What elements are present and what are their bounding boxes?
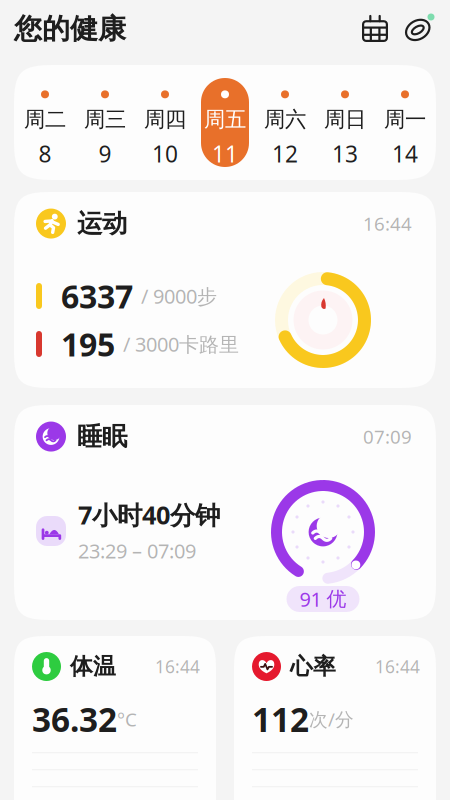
staticText: 8 (38, 139, 51, 169)
staticText: 睡眠 (77, 421, 127, 452)
staticText: 16:44 (375, 655, 420, 678)
staticText: 7小时40分钟 (78, 498, 220, 531)
staticText: 您的健康 (14, 12, 126, 46)
staticText: 周五 (204, 106, 246, 132)
staticText: 周三 (84, 106, 126, 132)
staticText: 91 (299, 586, 321, 612)
staticText: / 3000卡路里 (123, 331, 239, 357)
button[interactable]: 周六 (261, 78, 309, 167)
staticText: 心率 (290, 653, 336, 680)
staticText: 12 (272, 139, 298, 169)
staticText: 13 (332, 139, 358, 169)
staticText: 9 (98, 139, 111, 169)
button[interactable]: 91 (286, 586, 359, 612)
staticText: 运动 (77, 208, 127, 239)
staticText: 次/分 (309, 707, 354, 731)
staticText: 6337 (61, 275, 133, 317)
staticText: 11 (212, 139, 238, 169)
staticText: 14 (392, 139, 418, 169)
staticText: 体温 (70, 653, 116, 680)
button[interactable]: 周一 (381, 78, 429, 167)
staticText: / 9000步 (141, 283, 217, 309)
staticText: 周六 (264, 106, 306, 132)
staticText: 195 (61, 323, 115, 365)
button[interactable]: Device (397, 7, 441, 51)
staticText: 周一 (384, 106, 426, 132)
staticText: 周四 (144, 106, 186, 132)
button[interactable]: 周三 (81, 78, 129, 167)
button[interactable]: 周五 (201, 78, 249, 167)
staticText: 周二 (24, 106, 66, 132)
staticText: °C (117, 707, 137, 731)
button[interactable]: 周日 (321, 78, 369, 167)
staticText: 112 (252, 697, 309, 741)
button[interactable]: Calendar (353, 7, 397, 51)
staticText: 36.32 (32, 697, 117, 741)
staticText: 16:44 (363, 211, 412, 236)
staticText: 优 (326, 587, 346, 611)
staticText: 07:09 (363, 424, 412, 449)
staticText: 周日 (324, 106, 366, 132)
staticText: 23:29 – 07:09 (78, 537, 196, 564)
button[interactable]: 周四 (141, 78, 189, 167)
button[interactable]: 周二 (21, 78, 69, 167)
staticText: 10 (152, 139, 178, 169)
staticText: 16:44 (155, 655, 200, 678)
